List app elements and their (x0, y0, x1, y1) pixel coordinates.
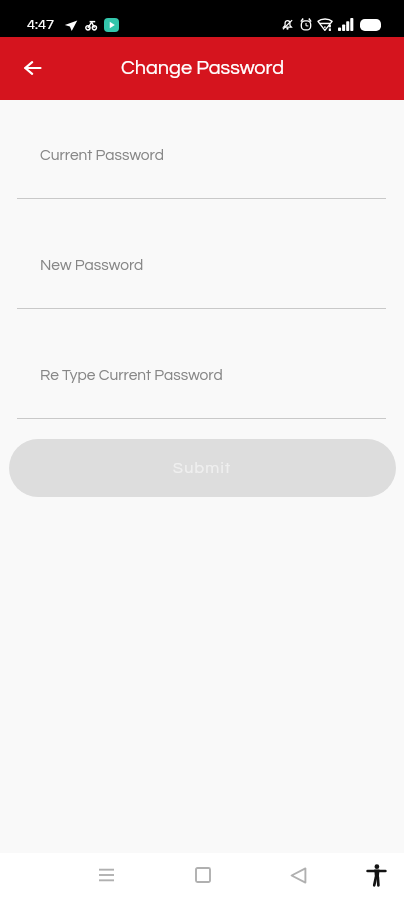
staticText: Current Password (40, 147, 164, 163)
staticText: 4:47 (27, 17, 54, 32)
button[interactable]: Back (12, 49, 52, 89)
staticText: New Password (40, 257, 144, 273)
button[interactable]: Recent apps (86, 855, 126, 895)
staticText: Change Password (121, 58, 285, 78)
button[interactable]: Submit (9, 439, 396, 497)
button[interactable]: Accessibility (356, 855, 396, 895)
staticText: Submit (173, 460, 232, 476)
staticText: Re Type Current Password (40, 367, 223, 383)
button[interactable]: Back (278, 855, 318, 895)
button[interactable]: Home (183, 855, 223, 895)
